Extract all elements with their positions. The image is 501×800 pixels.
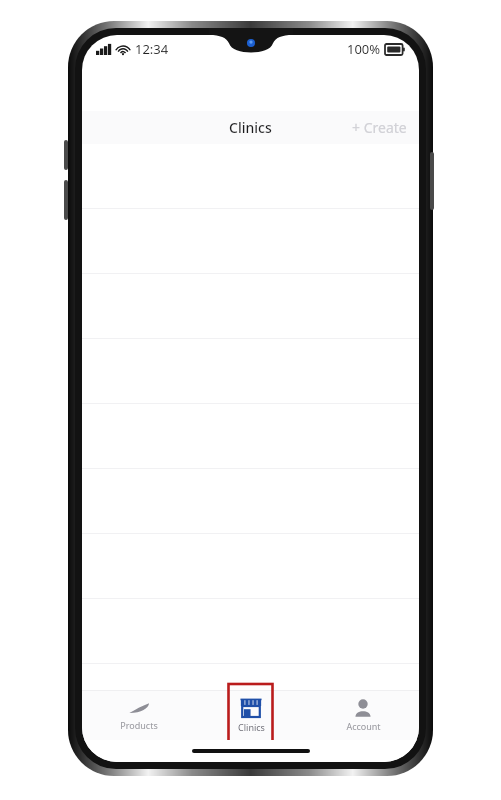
staticText: + Create [352,118,407,137]
button[interactable]: Clinics [195,690,307,740]
staticText: 100% [347,40,381,58]
button[interactable]: Products [82,690,195,740]
staticText: Clinics [229,118,272,137]
button[interactable]: + Create [348,114,411,141]
staticText: Clinics [238,721,265,733]
staticText: Products [120,719,158,731]
button[interactable]: Account [307,690,419,740]
staticText: 12:34 [135,40,169,58]
staticText: Account [346,720,381,732]
